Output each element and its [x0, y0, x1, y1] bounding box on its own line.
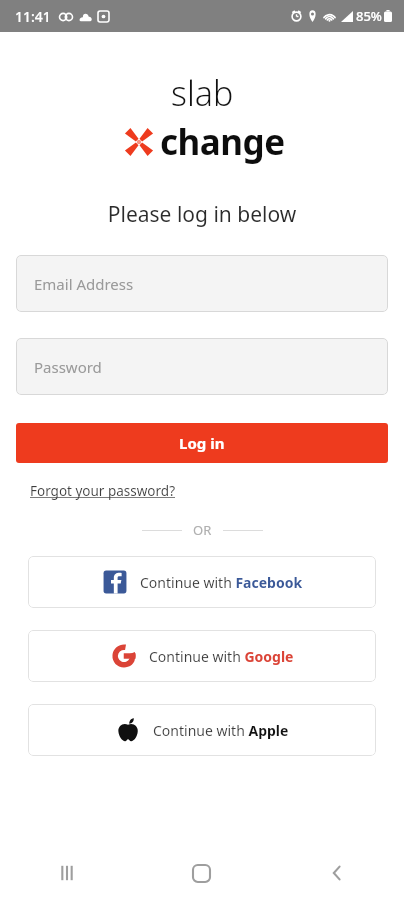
button[interactable]: Continue with Facebook [28, 556, 376, 608]
staticText: Please log in below [0, 200, 404, 229]
staticText: Forgot your password? [30, 482, 176, 500]
staticText: Password [34, 357, 102, 377]
staticText: Email Address [34, 274, 134, 294]
button[interactable]: Forgot your password? [30, 482, 176, 500]
button[interactable]: Back [269, 846, 404, 900]
staticText: Log in [179, 433, 225, 453]
staticText: 85% [356, 7, 382, 25]
button[interactable]: Log in [16, 423, 388, 463]
button[interactable]: Password [16, 338, 388, 395]
button[interactable]: Recent apps [0, 846, 134, 900]
button[interactable]: Continue with Google [28, 630, 376, 682]
staticText: slab [171, 70, 234, 116]
staticText: 11:41 [15, 7, 51, 26]
staticText: change [160, 118, 285, 166]
staticText: OR [193, 521, 212, 539]
button[interactable]: Continue with Apple [28, 704, 376, 756]
staticText: Continue with Facebook [140, 573, 303, 592]
button[interactable]: Home [134, 846, 269, 900]
button[interactable]: Email Address [16, 255, 388, 312]
staticText: Continue with Apple [153, 721, 289, 740]
staticText: Continue with Google [149, 647, 294, 666]
